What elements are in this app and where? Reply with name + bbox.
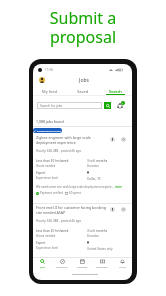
staticText: Less than 30 hrs/week (36, 159, 69, 163)
staticText: Dallas, TX (87, 177, 101, 181)
staticText: Less than 30 hrs/week (36, 229, 69, 233)
staticText: Hours needed (36, 164, 56, 168)
staticText: Saved (77, 89, 89, 94)
button[interactable]: Filters (116, 101, 125, 110)
button[interactable]: Saved (66, 87, 99, 95)
staticText: Duration (87, 164, 99, 168)
staticText: 1,088 jobs found (36, 119, 64, 124)
staticText: Hours needed (36, 234, 56, 238)
button[interactable]: Messages (92, 259, 112, 271)
staticText: Hourly: $40-$88 - posted 4h ago (36, 219, 81, 223)
button[interactable]: Save job (121, 207, 126, 212)
staticText: Experience level (36, 176, 58, 180)
staticText: Jobs (40, 265, 45, 268)
button[interactable]: My feed (33, 87, 66, 95)
staticText: My feed (42, 89, 58, 94)
staticText: Search (109, 89, 122, 94)
staticText: United States only (87, 247, 113, 251)
staticText: INTERMEDIATE LEVEL (37, 129, 61, 132)
button[interactable]: Proposals (52, 259, 72, 271)
staticText: Messages (96, 265, 108, 268)
staticText: Submit a proposal (20, 7, 146, 48)
staticText: Front end UI for customer facing booking… (36, 205, 107, 215)
staticText: We need some one with large scale deploy… (36, 185, 114, 189)
staticText: Alerts (119, 265, 126, 268)
button[interactable]: Alerts (112, 259, 132, 271)
button[interactable]: Jobs (33, 259, 52, 271)
button[interactable]: INTERMEDIATE LEVEL (34, 128, 61, 133)
staticText: Expert (36, 241, 46, 245)
staticText: Proposals (56, 265, 68, 268)
button[interactable]: Calendar (72, 259, 92, 271)
button[interactable]: Search for jobs (37, 102, 102, 109)
staticText: Zigbee engineer with large scale deploym… (36, 135, 107, 145)
button[interactable]: Search (99, 87, 132, 95)
staticText: Search for jobs (40, 104, 63, 108)
button[interactable]: Not interested (110, 207, 115, 212)
button[interactable]: Zigbee engineer with large scale deploym… (33, 135, 132, 201)
staticText: 1 (122, 102, 124, 105)
staticText: 3 to 6 months (87, 159, 108, 163)
staticText: 3 to 6 months (87, 229, 108, 233)
button[interactable]: Search (104, 102, 111, 109)
staticText: $0 spent (69, 191, 81, 195)
staticText: Calendar (77, 265, 88, 268)
staticText: Duration (87, 234, 99, 238)
staticText: Payment verified (40, 191, 63, 195)
button[interactable]: Profile (39, 77, 45, 83)
staticText: Expert (36, 171, 46, 175)
staticText: Jobs (79, 77, 90, 84)
button[interactable]: Front end UI for customer facing booking… (33, 205, 132, 257)
button[interactable]: Save job (121, 137, 126, 142)
staticText: 11:58 (45, 68, 53, 72)
button[interactable]: Not interested (110, 137, 115, 142)
staticText: more (114, 185, 122, 189)
staticText: Hourly: $40-$88 - posted 4h ago (36, 149, 81, 153)
staticText: Experience level (36, 246, 58, 250)
